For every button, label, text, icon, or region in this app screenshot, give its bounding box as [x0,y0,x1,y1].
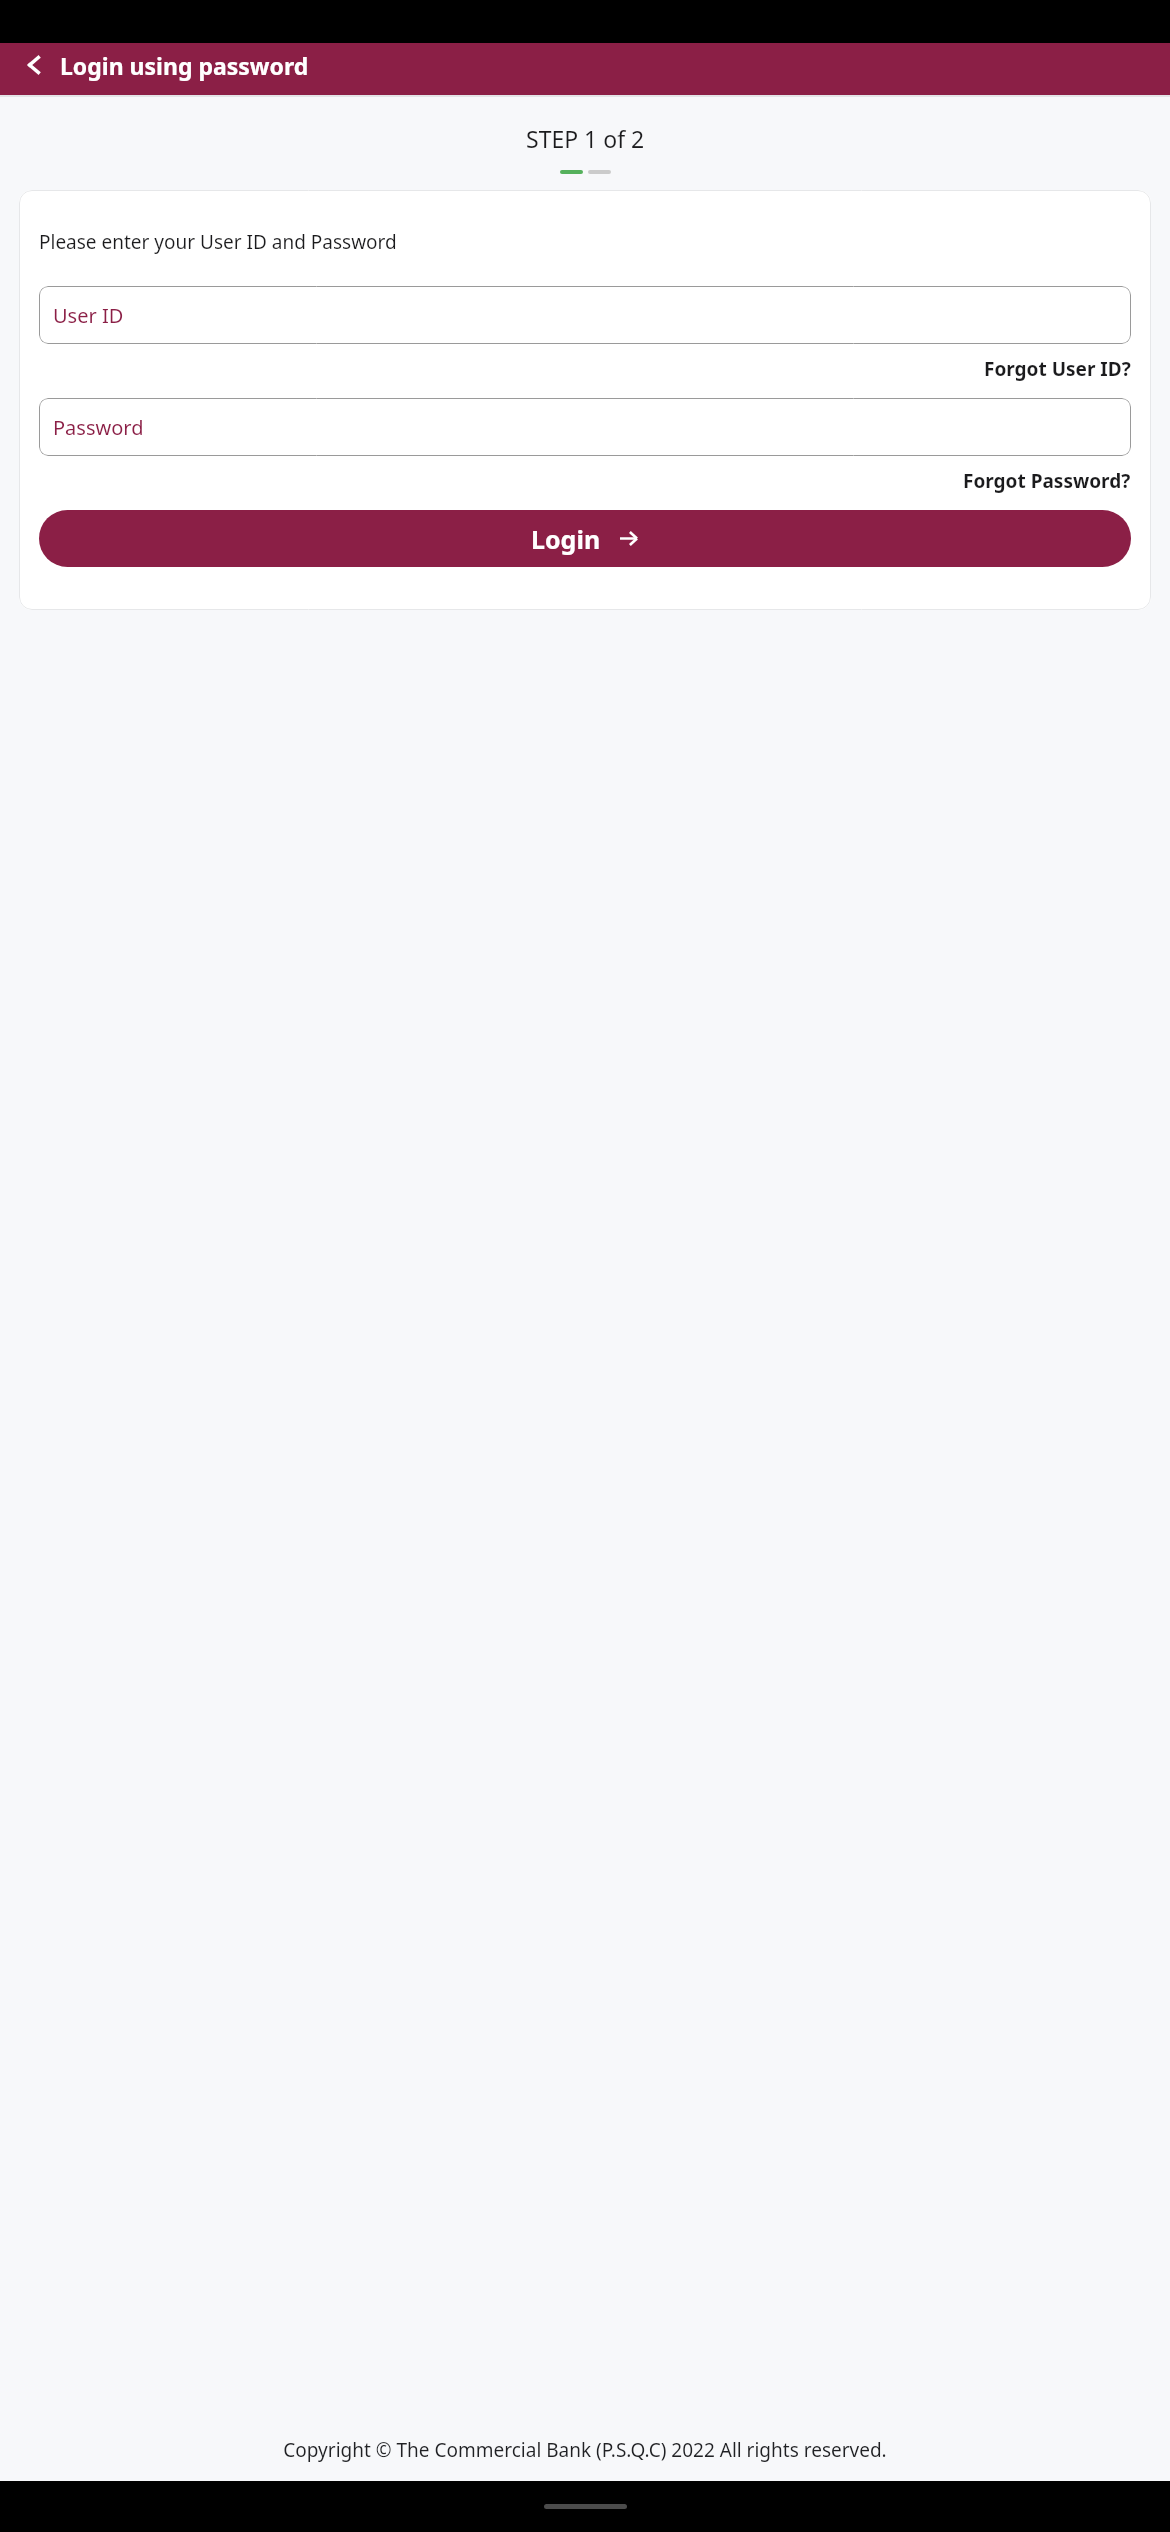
staticText: Copyright © The Commercial Bank (P.S.Q.C… [16,2437,1154,2463]
staticText: Forgot User ID? [984,356,1131,382]
staticText: Please enter your User ID and Password [39,229,397,255]
staticText: Password [53,414,144,441]
button[interactable]: Forgot User ID? [984,354,1131,384]
button[interactable]: Forgot Password? [963,466,1131,496]
button[interactable]: Password [39,398,1131,456]
button[interactable]: User ID [39,286,1131,344]
button[interactable]: Back [12,43,56,87]
staticText: STEP 1 of 2 [526,123,645,154]
button[interactable]: Login [39,510,1131,567]
staticText: Login [531,522,601,556]
staticText: Forgot Password? [963,468,1131,494]
staticText: User ID [53,302,124,329]
staticText: Login using password [60,50,309,81]
